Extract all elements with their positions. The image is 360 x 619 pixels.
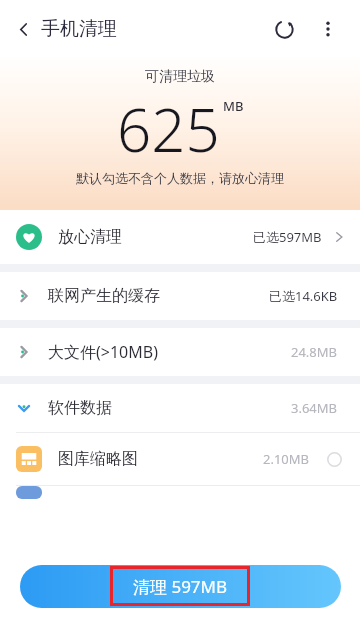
- button[interactable]: Select 图库缩略图: [322, 447, 346, 471]
- staticText: 可清理垃圾: [145, 68, 215, 86]
- staticText: 3.64MB: [291, 399, 338, 417]
- button[interactable]: 软件数据: [0, 384, 360, 432]
- staticText: 清理 597MB: [133, 575, 228, 598]
- button[interactable]: 大文件(>10MB): [0, 328, 360, 376]
- staticText: MB: [223, 97, 244, 115]
- staticText: 625: [117, 88, 220, 170]
- button[interactable]: More options: [306, 7, 350, 51]
- staticText: 默认勾选不含个人数据，请放心清理: [76, 170, 284, 186]
- staticText: 软件数据: [48, 398, 112, 418]
- button[interactable]: 放心清理: [0, 210, 360, 264]
- staticText: 已选14.6KB: [269, 287, 338, 305]
- staticText: 放心清理: [58, 227, 122, 247]
- staticText: 已选597MB: [253, 228, 322, 246]
- staticText: 大文件(>10MB): [48, 341, 158, 363]
- staticText: 图库缩略图: [58, 449, 138, 469]
- staticText: 联网产生的缓存: [48, 286, 160, 306]
- staticText: 手机清理: [41, 17, 117, 41]
- button[interactable]: 联网产生的缓存: [0, 272, 360, 320]
- staticText: 24.8MB: [291, 343, 338, 361]
- button[interactable]: 图库缩略图: [0, 433, 360, 485]
- button[interactable]: 清理 597MB: [20, 565, 341, 608]
- button[interactable]: 手机清理: [14, 17, 123, 41]
- button[interactable]: Refresh: [262, 7, 306, 51]
- staticText: 2.10MB: [263, 450, 310, 468]
